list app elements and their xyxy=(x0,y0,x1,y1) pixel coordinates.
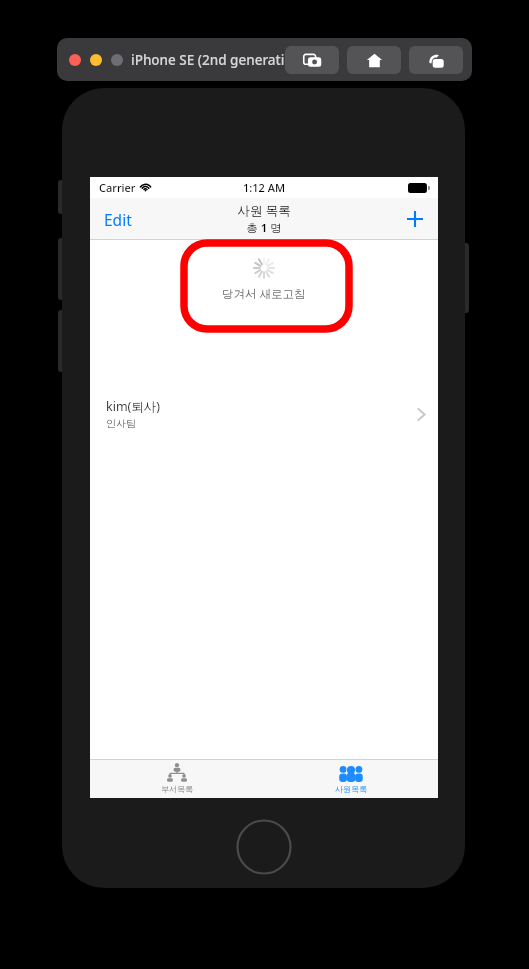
staticText: Edit xyxy=(104,209,132,230)
button[interactable]: kim(퇴사) xyxy=(90,392,438,436)
staticText: 사원 목록 xyxy=(237,202,291,219)
button[interactable]: Home button xyxy=(236,819,292,875)
staticText: 당겨서 새로고침 xyxy=(222,286,306,302)
button[interactable]: Close xyxy=(69,54,81,66)
staticText: iPhone SE (2nd generatio... xyxy=(131,51,304,69)
button[interactable]: 사원목록 xyxy=(264,760,438,798)
staticText: 총 1 명 xyxy=(246,220,282,236)
button[interactable]: Share xyxy=(409,46,463,74)
staticText: kim(퇴사) xyxy=(106,398,161,415)
staticText: 인사팀 xyxy=(106,417,136,430)
staticText: 1:12 AM xyxy=(243,180,286,195)
button[interactable]: Home xyxy=(347,46,401,74)
staticText: Carrier xyxy=(99,180,136,195)
button[interactable]: 부서목록 xyxy=(90,760,264,798)
button[interactable]: Screenshot xyxy=(285,46,339,74)
button[interactable]: Zoom xyxy=(111,54,123,66)
staticText: 사원목록 xyxy=(335,784,367,794)
button[interactable]: Edit xyxy=(94,204,142,235)
button[interactable]: Add employee xyxy=(399,203,431,235)
staticText: 부서목록 xyxy=(161,784,193,794)
button[interactable]: Minimize xyxy=(90,54,102,66)
